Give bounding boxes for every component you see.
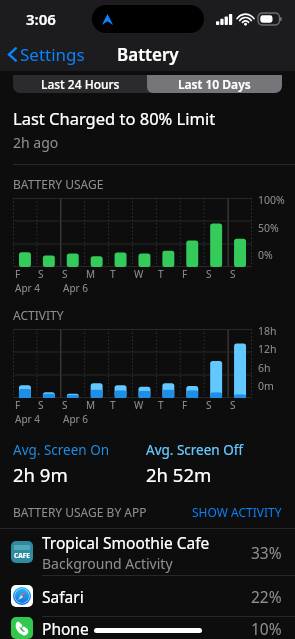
staticText: 50% <box>258 221 279 235</box>
staticText: T <box>110 267 116 281</box>
staticText: S <box>62 267 68 281</box>
staticText: T <box>110 398 116 412</box>
staticText: ACTIVITY <box>13 307 64 323</box>
staticText: Apr 6 <box>63 412 88 426</box>
staticText: 2h 9m <box>13 462 68 487</box>
staticText: Settings <box>20 43 85 66</box>
button[interactable]: Safari <box>0 576 295 616</box>
staticText: T <box>158 398 164 412</box>
staticText: F <box>15 267 21 281</box>
staticText: S <box>206 398 212 412</box>
staticText: Last 24 Hours <box>41 76 120 92</box>
staticText: 22% <box>251 586 282 607</box>
staticText: Avg. Screen Off <box>146 441 244 459</box>
staticText: SHOW ACTIVITY <box>192 504 282 520</box>
staticText: 12h <box>258 342 277 356</box>
staticText: BATTERY USAGE <box>13 176 104 192</box>
staticText: W <box>134 267 144 281</box>
button[interactable]: Last 24 Hours <box>13 75 147 93</box>
staticText: Phone <box>42 618 89 639</box>
staticText: Last Charged to 80% Limit <box>13 107 216 129</box>
staticText: 100% <box>258 193 285 207</box>
staticText: BATTERY USAGE BY APP <box>13 504 147 520</box>
staticText: 2h ago <box>13 133 59 152</box>
staticText: S <box>38 267 44 281</box>
staticText: F <box>182 267 188 281</box>
button[interactable]: Phone <box>0 617 295 639</box>
staticText: T <box>158 267 164 281</box>
staticText: W <box>134 398 144 412</box>
staticText: S <box>230 267 236 281</box>
staticText: 2h 52m <box>146 462 212 487</box>
staticText: S <box>206 267 212 281</box>
staticText: M <box>86 398 96 412</box>
staticText: Avg. Screen On <box>13 441 110 459</box>
staticText: CAFE <box>14 551 30 560</box>
staticText: 6h <box>258 361 271 375</box>
staticText: 0% <box>258 248 273 262</box>
staticText: Last 10 Days <box>178 76 251 92</box>
staticText: Battery <box>117 43 179 66</box>
staticText: S <box>38 398 44 412</box>
staticText: Tropical Smoothie Cafe <box>42 532 210 553</box>
staticText: Background Activity <box>42 554 173 573</box>
staticText: S <box>230 398 236 412</box>
button[interactable]: Settings <box>0 38 91 71</box>
staticText: Apr 6 <box>63 281 88 295</box>
button[interactable]: Last 10 Days <box>147 75 282 93</box>
staticText: 3:06 <box>26 9 56 29</box>
staticText: F <box>182 398 188 412</box>
staticText: F <box>15 398 21 412</box>
staticText: 10% <box>251 618 282 639</box>
staticText: S <box>62 398 68 412</box>
button[interactable]: SHOW ACTIVITY <box>192 504 282 520</box>
staticText: 18h <box>258 324 277 338</box>
staticText: 33% <box>251 542 282 563</box>
staticText: Safari <box>42 586 84 607</box>
staticText: Apr 4 <box>15 412 40 426</box>
staticText: Apr 4 <box>15 281 40 295</box>
staticText: M <box>86 267 96 281</box>
staticText: 0m <box>258 379 274 393</box>
button[interactable]: CAFE <box>0 529 295 575</box>
